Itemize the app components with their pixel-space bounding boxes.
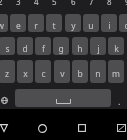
staticText: i <box>108 20 111 32</box>
button[interactable]: k <box>108 37 124 55</box>
staticText: 3 <box>16 0 21 7</box>
button[interactable]: s <box>0 37 15 55</box>
staticText: 2 <box>0 0 3 7</box>
button[interactable]: . <box>112 89 127 107</box>
staticText: j <box>97 43 100 55</box>
button[interactable]: j <box>90 37 106 55</box>
staticText: 5 <box>52 0 57 7</box>
staticText: b <box>77 68 83 80</box>
button[interactable]: n <box>90 60 106 83</box>
staticText: m <box>112 68 120 80</box>
button[interactable]: Space <box>15 89 111 107</box>
button[interactable]: 9 <box>119 0 127 7</box>
button[interactable]: w <box>0 14 8 32</box>
staticText: 6 <box>71 0 76 7</box>
button[interactable]: Switch input method <box>115 122 127 134</box>
button[interactable]: Home <box>36 122 48 134</box>
staticText: y <box>71 20 76 32</box>
button[interactable]: 2 <box>0 0 8 7</box>
button[interactable]: t <box>46 14 62 32</box>
button[interactable]: x <box>17 60 33 83</box>
staticText: k <box>114 43 119 55</box>
staticText: s <box>5 43 10 55</box>
button[interactable]: i <box>101 14 117 32</box>
button[interactable]: r <box>28 14 44 32</box>
button[interactable]: 8 <box>101 0 117 7</box>
staticText: e <box>16 20 21 32</box>
staticText: r <box>34 20 38 32</box>
button[interactable]: 6 <box>65 0 81 7</box>
staticText: h <box>77 43 83 55</box>
button[interactable]: Recent apps <box>76 122 88 134</box>
button[interactable]: c <box>35 60 51 83</box>
staticText: x <box>23 68 28 80</box>
button[interactable]: b <box>72 60 88 83</box>
staticText: 8 <box>107 0 112 7</box>
staticText: d <box>22 43 28 55</box>
staticText: o <box>124 20 127 32</box>
staticText: t <box>52 20 56 32</box>
button[interactable]: f <box>35 37 51 55</box>
button[interactable]: Back <box>0 122 10 134</box>
button[interactable]: v <box>54 60 70 83</box>
button[interactable]: h <box>72 37 88 55</box>
button[interactable]: Change keyboard language <box>0 89 11 107</box>
staticText: g <box>58 43 64 55</box>
staticText: 9 <box>125 0 127 7</box>
staticText: f <box>42 43 45 55</box>
staticText: n <box>95 68 101 80</box>
staticText: u <box>88 20 94 32</box>
button[interactable]: o <box>119 14 127 32</box>
button[interactable]: 3 <box>10 0 26 7</box>
button[interactable]: g <box>53 37 69 55</box>
button[interactable]: d <box>17 37 33 55</box>
staticText: z <box>5 68 9 80</box>
button[interactable]: 4 <box>28 0 44 7</box>
button[interactable]: z <box>0 60 15 83</box>
staticText: v <box>60 68 65 80</box>
staticText: c <box>41 68 46 80</box>
staticText: . <box>118 95 121 107</box>
staticText: 4 <box>34 0 39 7</box>
button[interactable]: u <box>83 14 99 32</box>
button[interactable]: y <box>65 14 81 32</box>
button[interactable]: m <box>108 60 124 83</box>
button[interactable]: e <box>10 14 26 32</box>
staticText: w <box>0 20 4 32</box>
button[interactable]: 5 <box>46 0 62 7</box>
button[interactable]: 7 <box>83 0 99 7</box>
staticText: 7 <box>89 0 94 7</box>
